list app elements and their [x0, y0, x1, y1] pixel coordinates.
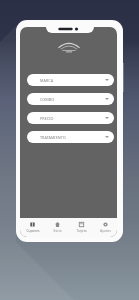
staticText: MARCA [40, 78, 54, 83]
staticText: Cupones [26, 229, 40, 233]
button[interactable]: Tarjeta [69, 218, 93, 237]
button[interactable]: COMBO [27, 93, 114, 105]
staticText: COMBO [40, 97, 55, 102]
button[interactable]: Cupones [20, 218, 45, 237]
button[interactable]: Inicio [45, 218, 69, 237]
staticText: Tarjeta [76, 229, 87, 233]
button[interactable]: PRECIO [27, 112, 114, 124]
button[interactable]: Ajustes [93, 218, 117, 237]
staticText: PRECIO [40, 116, 54, 121]
staticText: Inicio [53, 229, 62, 233]
button[interactable]: TRATAMIENTO [27, 131, 114, 143]
staticText: Ajustes [100, 229, 111, 233]
staticText: TRATAMIENTO [40, 135, 66, 140]
button[interactable]: MARCA [27, 74, 114, 86]
